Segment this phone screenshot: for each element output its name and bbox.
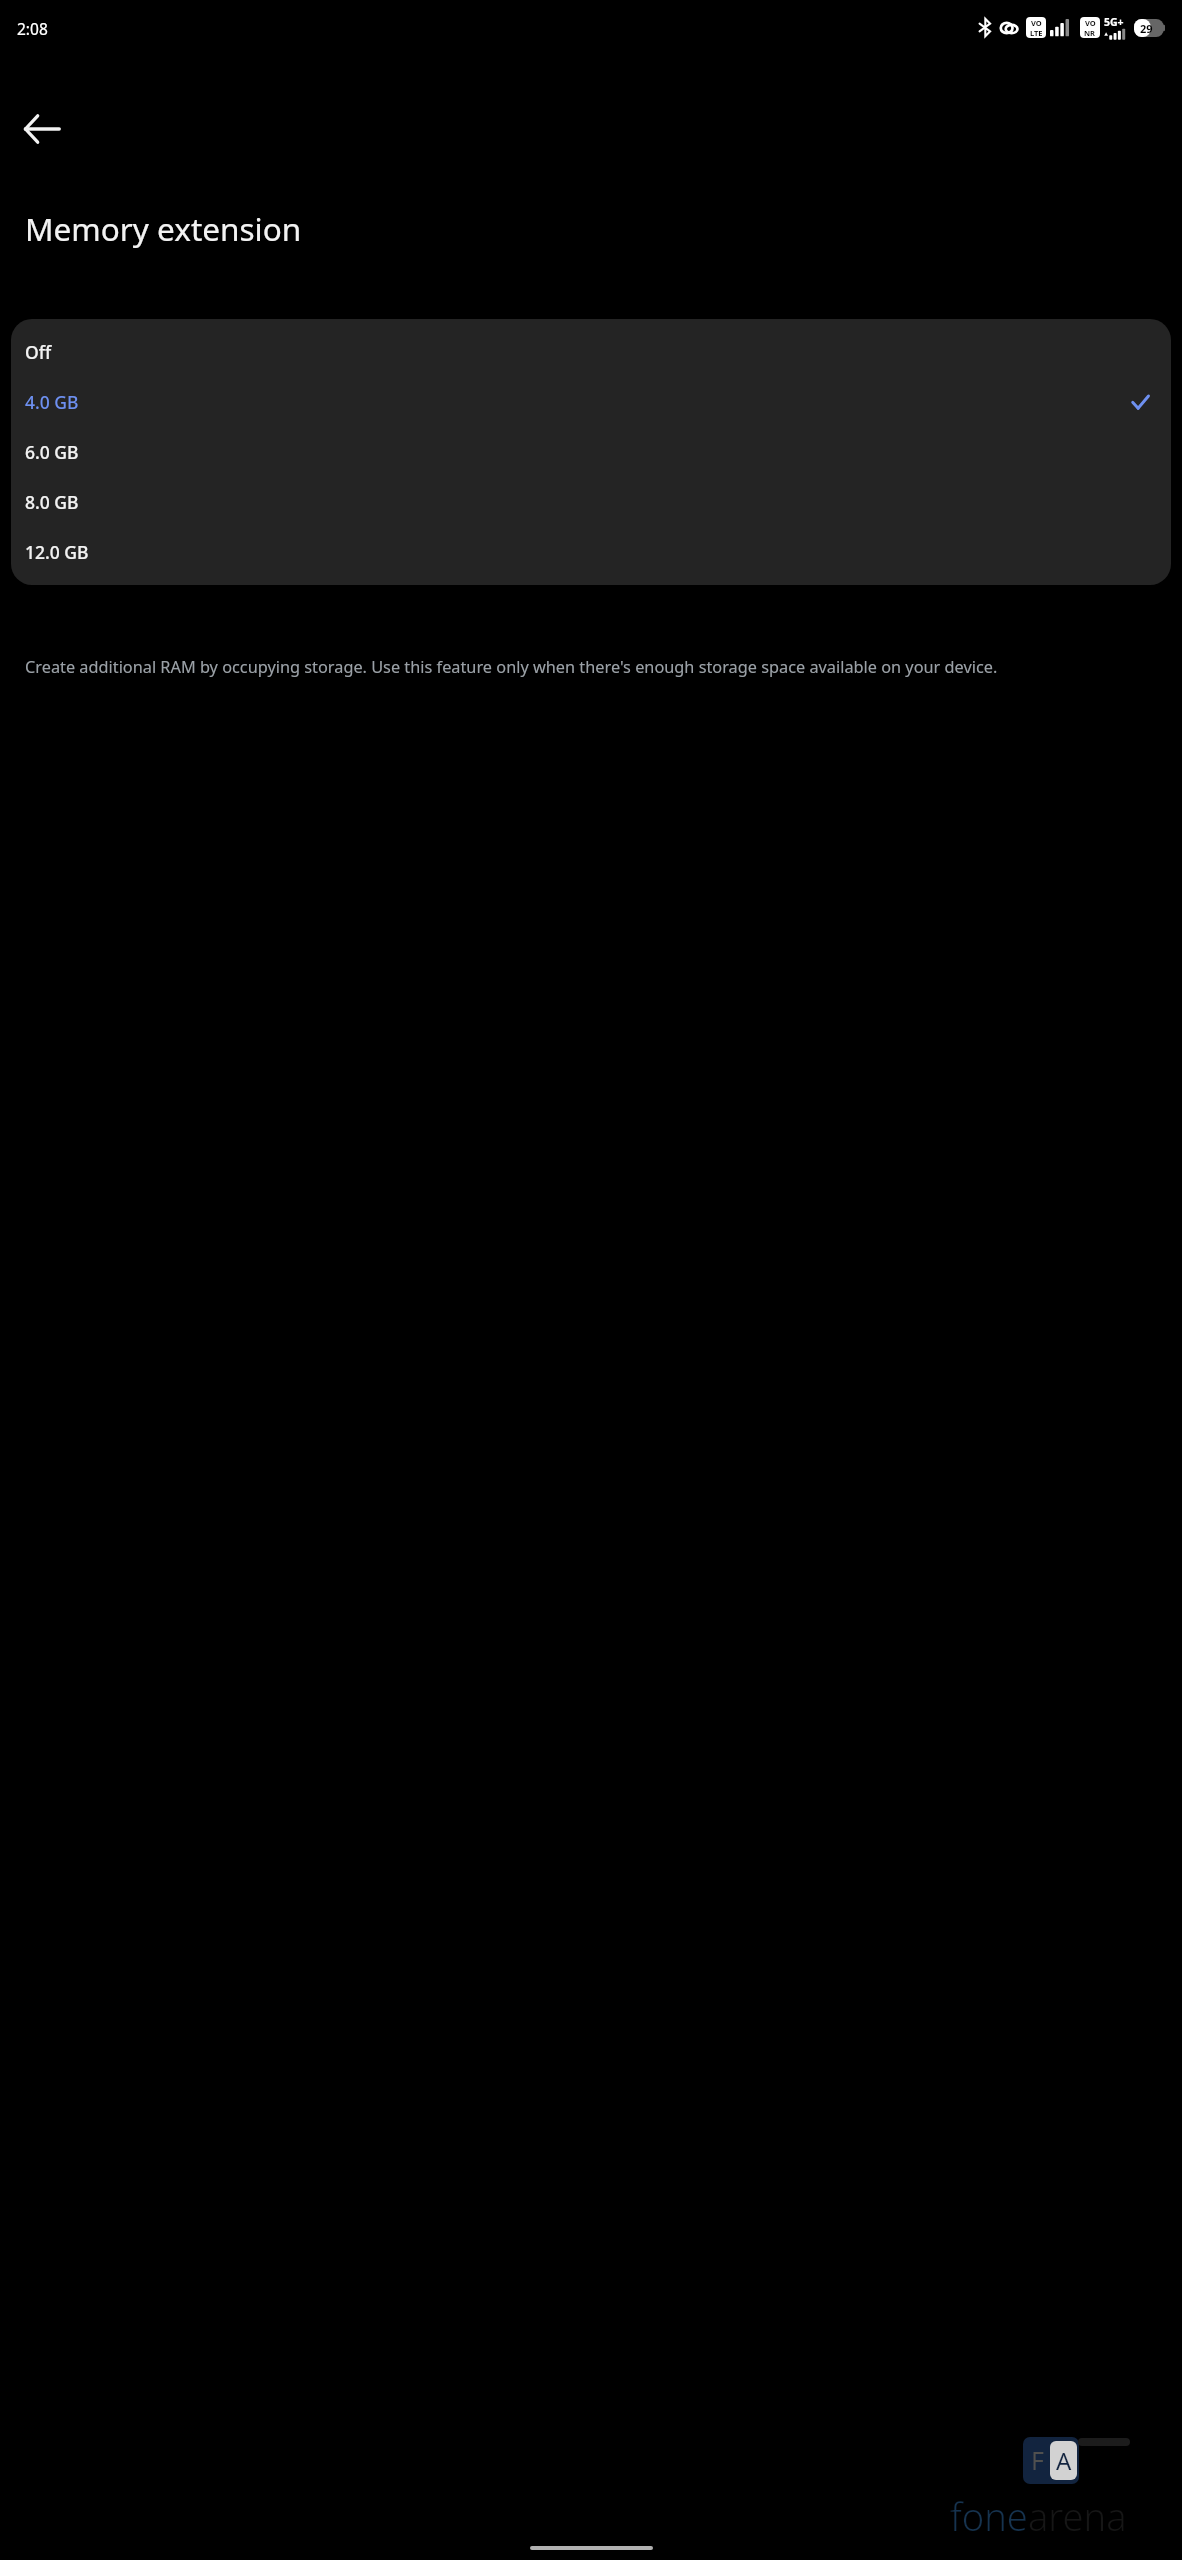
staticText: Off — [25, 340, 52, 364]
staticText: 4.0 GB — [25, 390, 79, 414]
button[interactable]: Off — [11, 327, 1171, 377]
staticText: 12.0 GB — [25, 540, 89, 564]
button[interactable]: 6.0 GB — [11, 427, 1171, 477]
staticText: 6.0 GB — [25, 440, 79, 464]
staticText: F — [1031, 2443, 1044, 2477]
staticText: 8.0 GB — [25, 490, 79, 514]
staticText: VO — [1031, 18, 1042, 28]
staticText: 2:08 — [17, 18, 48, 39]
staticText: 29 — [1140, 21, 1153, 36]
button[interactable]: Back — [14, 101, 70, 157]
staticText: fone — [950, 2490, 1028, 2542]
staticText: arena — [1028, 2490, 1127, 2542]
staticText: VO — [1085, 18, 1096, 28]
button[interactable]: 4.0 GB — [11, 377, 1171, 427]
staticText: 5G+ — [1104, 15, 1124, 29]
button[interactable]: 12.0 GB — [11, 527, 1171, 577]
staticText: NR — [1084, 28, 1096, 38]
staticText: A — [1056, 2444, 1072, 2477]
button[interactable]: 8.0 GB — [11, 477, 1171, 527]
staticText: Create additional RAM by occupying stora… — [25, 656, 998, 678]
staticText: LTE — [1030, 28, 1043, 38]
staticText: Memory extension — [25, 207, 302, 250]
